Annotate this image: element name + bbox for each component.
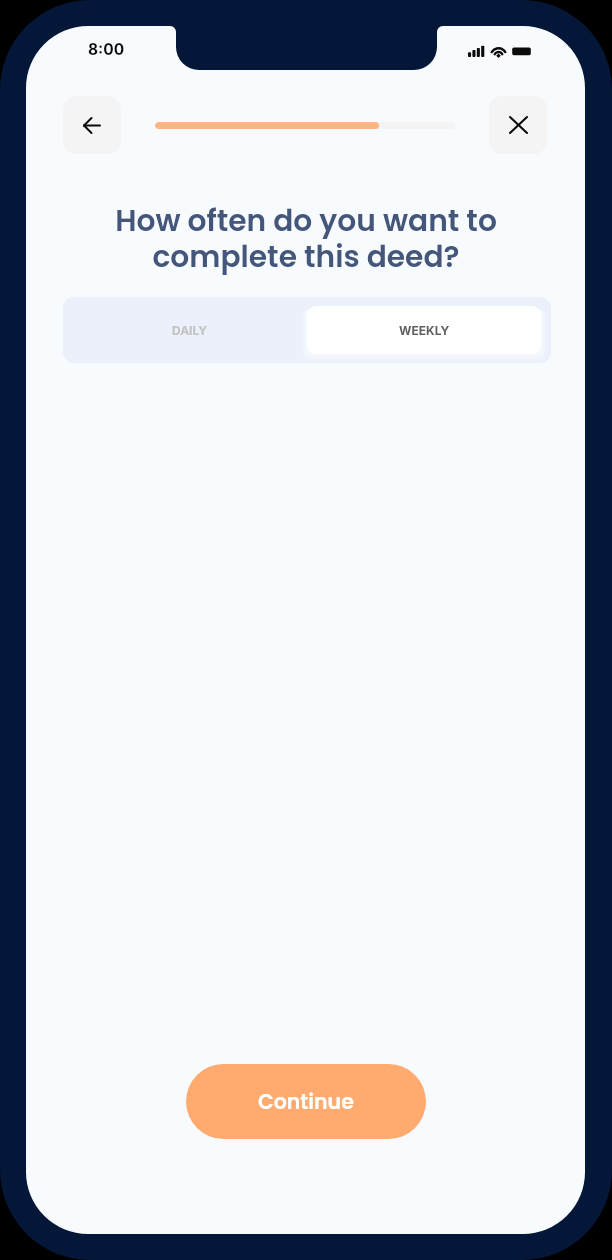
staticText: 8:00 (88, 40, 125, 59)
staticText: WEEKLY (399, 323, 450, 338)
staticText: DAILY (172, 323, 208, 338)
button[interactable]: Close (489, 96, 547, 154)
staticText: How often do you want to complete this d… (0, 200, 612, 277)
button[interactable]: Continue (186, 1064, 426, 1139)
button[interactable]: Back (63, 96, 121, 154)
staticText: Continue (258, 1087, 354, 1116)
button[interactable]: WEEKLY (307, 306, 541, 354)
button[interactable]: DAILY (63, 297, 316, 363)
